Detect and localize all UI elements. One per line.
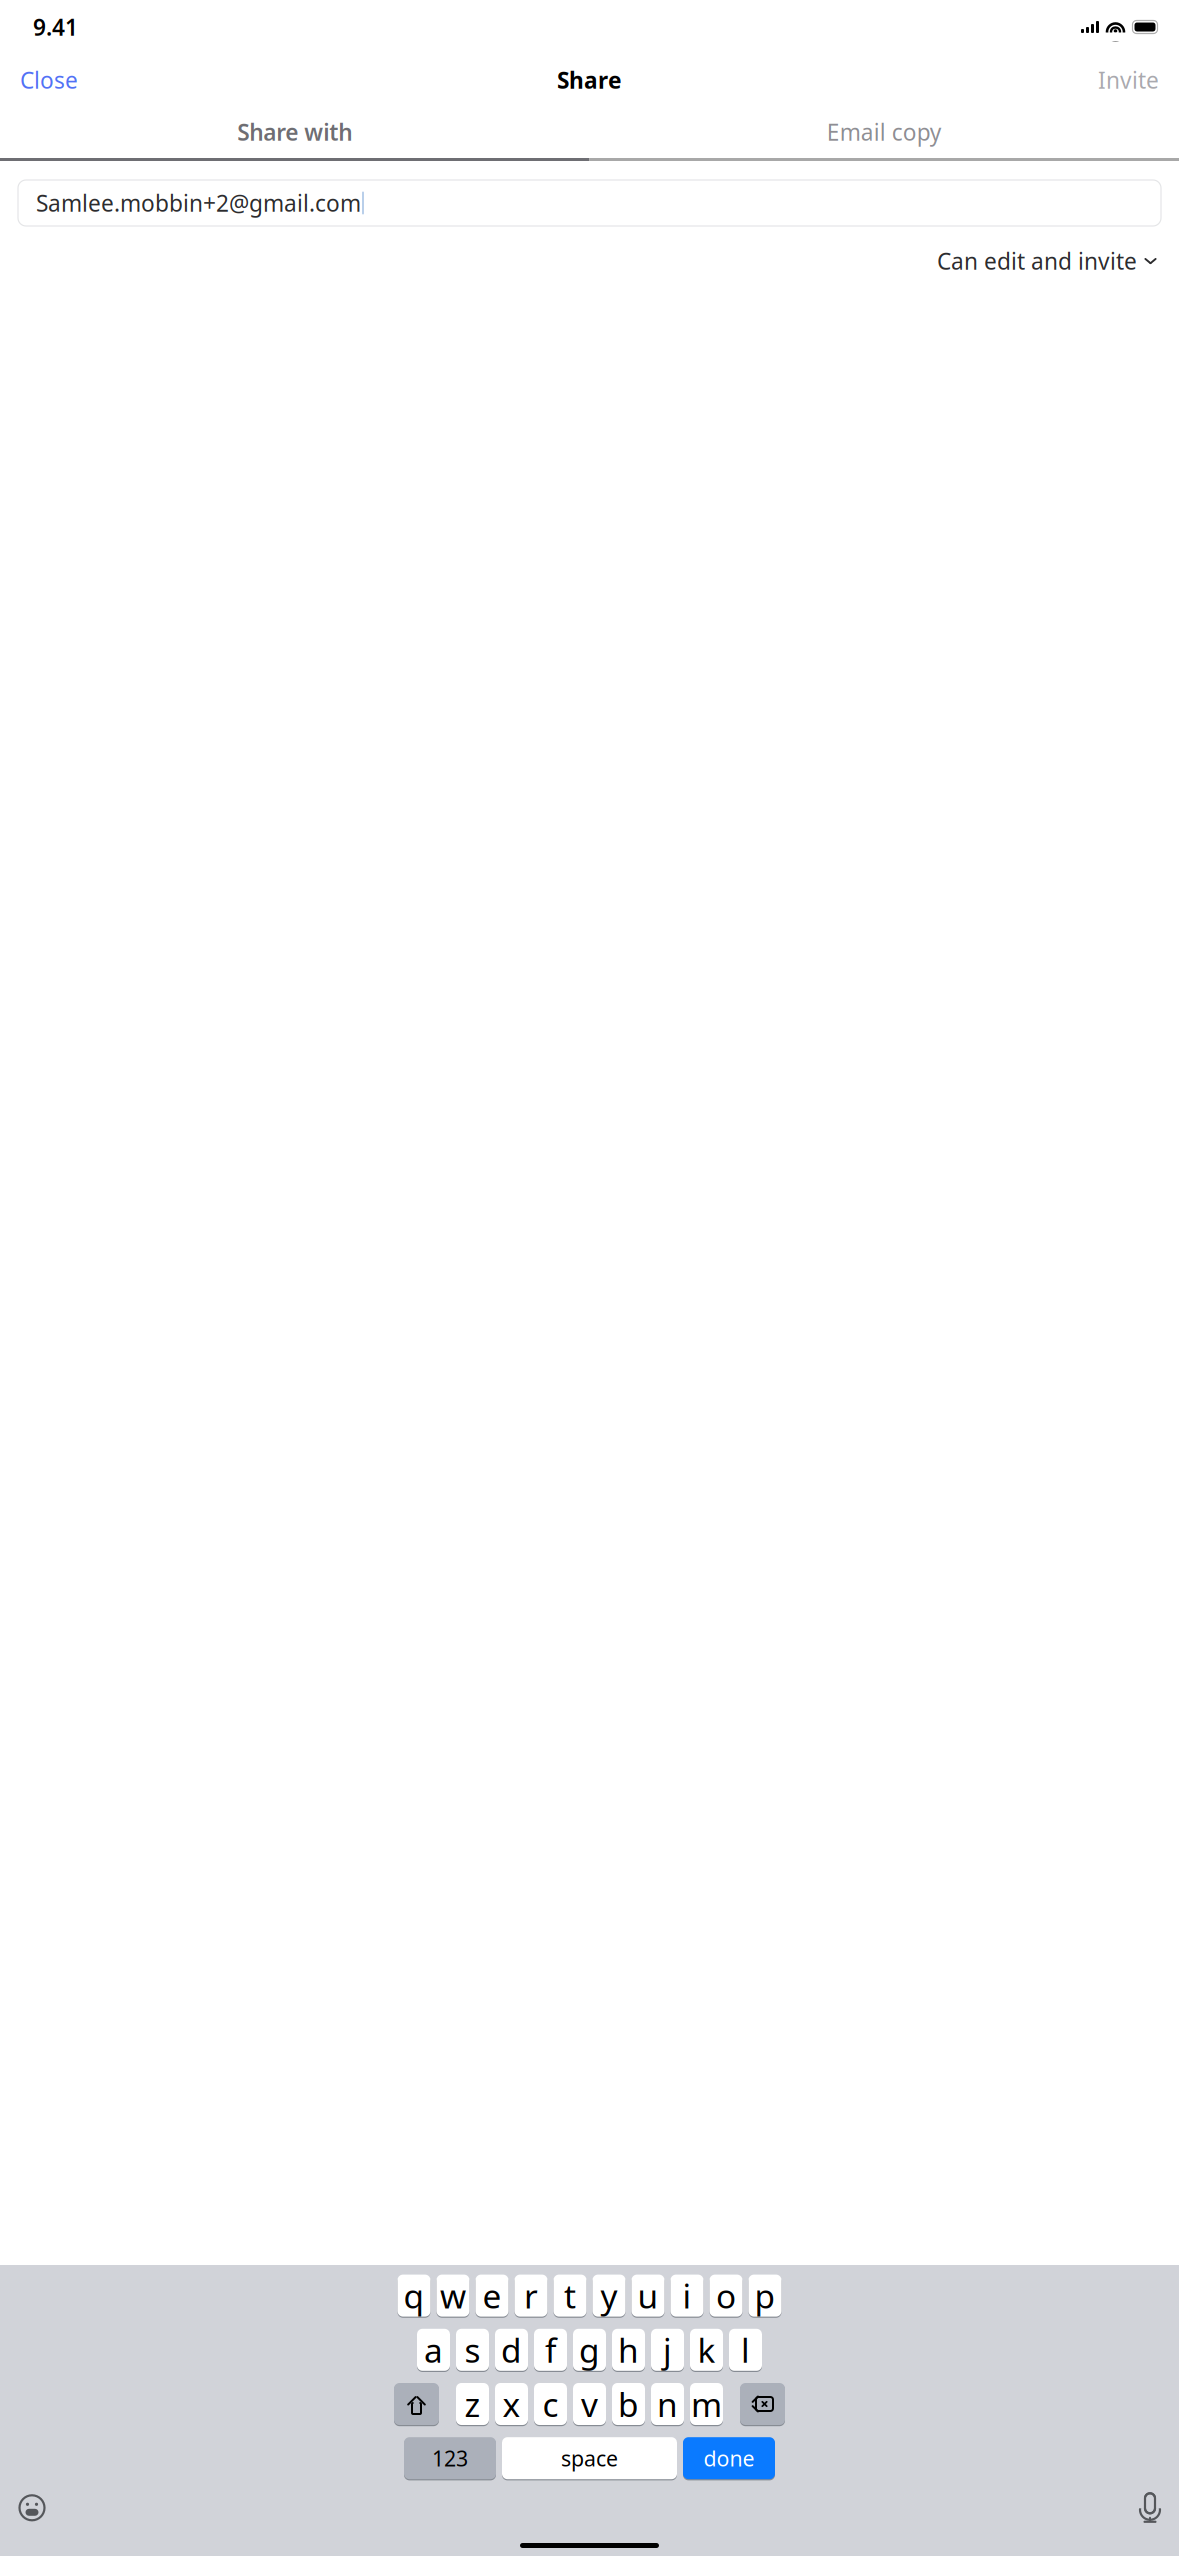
staticText: g [579, 2328, 600, 2372]
staticText: c [542, 2382, 558, 2426]
staticText: space [561, 2444, 618, 2472]
button[interactable]: Invite [1082, 54, 1175, 106]
staticText: v [581, 2382, 598, 2426]
staticText: i [682, 2273, 691, 2318]
staticText: f [545, 2328, 556, 2372]
button[interactable]: b [612, 2382, 645, 2426]
button[interactable]: Dictation [1133, 2489, 1167, 2527]
button[interactable]: Delete [740, 2382, 785, 2426]
staticText: k [697, 2328, 715, 2372]
staticText: b [618, 2382, 639, 2426]
button[interactable]: g [573, 2328, 606, 2371]
staticText: h [618, 2328, 639, 2372]
button[interactable]: o [709, 2274, 742, 2317]
staticText: d [501, 2328, 522, 2372]
staticText: Samlee.mobbin+2@gmail.com [36, 188, 361, 218]
button[interactable]: r [514, 2274, 547, 2317]
button[interactable]: e [475, 2274, 508, 2317]
button[interactable]: 123 [404, 2437, 496, 2480]
staticText: t [564, 2273, 576, 2318]
button[interactable]: i [670, 2274, 703, 2317]
staticText: m [691, 2382, 722, 2426]
button[interactable]: h [612, 2328, 645, 2371]
button[interactable]: done [683, 2437, 775, 2480]
staticText: Invite [1098, 65, 1159, 95]
button[interactable]: f [534, 2328, 567, 2371]
button[interactable]: Email copy [589, 103, 1179, 161]
button[interactable]: z [456, 2382, 489, 2426]
button[interactable]: Share with [0, 103, 589, 161]
button[interactable]: k [690, 2328, 723, 2371]
staticText: z [464, 2382, 480, 2426]
staticText: Share [557, 65, 622, 95]
button[interactable]: d [495, 2328, 528, 2371]
staticText: Share with [237, 117, 352, 147]
staticText: Email copy [827, 117, 942, 147]
staticText: w [440, 2273, 466, 2318]
staticText: o [716, 2273, 736, 2318]
staticText: n [657, 2382, 678, 2426]
button[interactable]: y [592, 2274, 625, 2317]
button[interactable]: w [436, 2274, 469, 2317]
button[interactable]: j [651, 2328, 684, 2371]
staticText: a [424, 2328, 443, 2372]
button[interactable]: l [729, 2328, 762, 2371]
button[interactable]: x [495, 2382, 528, 2426]
button[interactable]: space [502, 2437, 677, 2480]
button[interactable]: Can edit and invite [933, 235, 1161, 287]
staticText: 9.41 [33, 12, 78, 42]
staticText: Can edit and invite [937, 246, 1137, 276]
staticText: p [754, 2273, 775, 2318]
button[interactable]: c [534, 2382, 567, 2426]
staticText: Close [20, 65, 78, 95]
staticText: q [403, 2273, 424, 2318]
button[interactable]: q [397, 2274, 430, 2317]
staticText: s [464, 2328, 480, 2372]
staticText: l [741, 2328, 750, 2372]
staticText: x [502, 2382, 520, 2426]
button[interactable]: a [417, 2328, 450, 2371]
button[interactable]: t [553, 2274, 586, 2317]
staticText: e [482, 2273, 501, 2318]
button[interactable]: m [690, 2382, 723, 2426]
staticText: j [663, 2328, 672, 2372]
staticText: u [637, 2273, 658, 2318]
button[interactable]: n [651, 2382, 684, 2426]
staticText: 123 [432, 2444, 468, 2472]
button[interactable]: p [748, 2274, 781, 2317]
button[interactable]: Emoji keyboard [12, 2488, 52, 2528]
staticText: r [524, 2273, 538, 2318]
button[interactable]: s [456, 2328, 489, 2371]
button[interactable]: Shift [394, 2382, 439, 2426]
button[interactable]: u [631, 2274, 664, 2317]
staticText: done [703, 2444, 754, 2472]
button[interactable]: v [573, 2382, 606, 2426]
staticText: y [600, 2273, 617, 2318]
button[interactable]: Close [4, 54, 94, 106]
